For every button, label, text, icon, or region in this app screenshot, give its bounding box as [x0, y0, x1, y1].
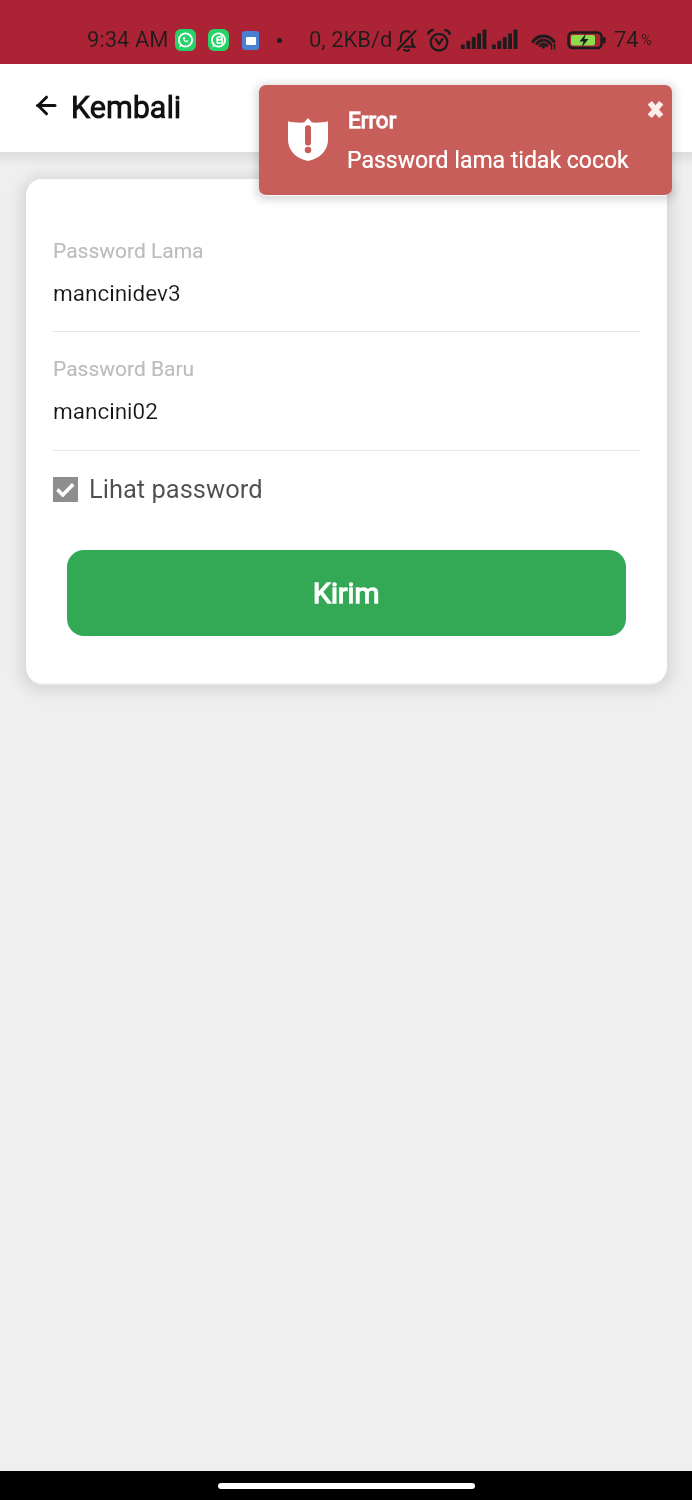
staticText: Error: [348, 107, 397, 133]
staticText: %: [641, 31, 652, 49]
staticText: mancinidev3: [53, 280, 181, 306]
staticText: 74: [614, 27, 639, 53]
staticText: 0, 2KB/d: [309, 27, 393, 53]
staticText: mancini02: [53, 398, 158, 424]
button[interactable]: Back: [23, 83, 68, 128]
staticText: Lihat password: [89, 474, 263, 504]
button[interactable]: Close: [633, 87, 672, 131]
staticText: Password Baru: [53, 357, 195, 382]
button[interactable]: Kirim: [67, 550, 626, 636]
staticText: Password lama tidak cocok: [347, 147, 629, 174]
staticText: Kirim: [313, 577, 380, 610]
staticText: Kembali: [71, 90, 182, 126]
button[interactable]: Lihat password: [53, 473, 263, 505]
staticText: Password Lama: [53, 239, 204, 264]
staticText: 9:34 AM: [87, 27, 169, 53]
